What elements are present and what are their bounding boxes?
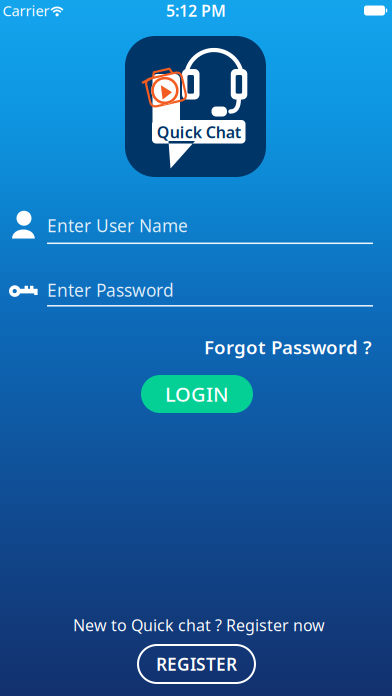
staticText: Carrier bbox=[2, 1, 49, 20]
staticText: Forgot Password ? bbox=[204, 335, 372, 359]
staticText: LOGIN bbox=[165, 381, 229, 407]
staticText: Enter User Name bbox=[47, 214, 188, 237]
button[interactable]: Forgot Password ? bbox=[152, 335, 372, 359]
staticText: REGISTER bbox=[156, 652, 237, 675]
button[interactable]: REGISTER bbox=[138, 645, 255, 683]
staticText: New to Quick chat ? Register now bbox=[73, 614, 325, 636]
staticText: Enter Password bbox=[47, 278, 174, 301]
button[interactable]: LOGIN bbox=[141, 375, 253, 413]
staticText: 5:12 PM bbox=[166, 0, 226, 21]
button[interactable]: Enter Password bbox=[0, 266, 392, 314]
button[interactable]: Enter User Name bbox=[0, 202, 392, 250]
staticText: Quick Chat bbox=[157, 121, 241, 143]
